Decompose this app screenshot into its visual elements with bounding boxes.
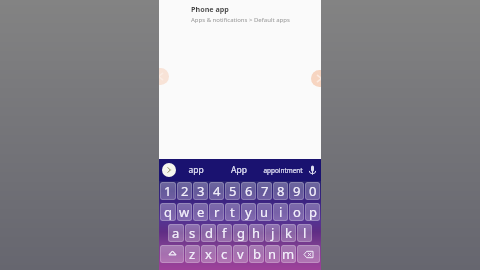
staticText: t [230, 203, 235, 221]
button[interactable]: w [177, 203, 192, 221]
button[interactable]: Voice input [307, 165, 318, 176]
button[interactable]: App [219, 159, 259, 181]
button[interactable]: s [185, 224, 200, 242]
staticText: l [303, 224, 307, 242]
staticText: 6 [245, 182, 253, 200]
button[interactable]: Expand suggestions [162, 163, 176, 177]
staticText: w [179, 203, 190, 221]
button[interactable]: u [257, 203, 272, 221]
button[interactable]: x [201, 245, 216, 263]
staticText: a [172, 224, 180, 242]
staticText: g [237, 224, 245, 242]
staticText: k [285, 224, 292, 242]
staticText: 8 [277, 182, 285, 200]
staticText: i [279, 203, 283, 221]
button[interactable]: i [273, 203, 288, 221]
staticText: 9 [293, 182, 301, 200]
button[interactable]: Backspace [297, 245, 320, 263]
button[interactable]: o [289, 203, 304, 221]
staticText: u [260, 203, 269, 221]
button[interactable]: 6 [241, 182, 256, 200]
button[interactable]: k [281, 224, 296, 242]
staticText: y [245, 203, 252, 221]
button[interactable]: 1 [160, 182, 176, 200]
staticText: 2 [181, 182, 189, 200]
button[interactable]: 7 [257, 182, 272, 200]
staticText: r [214, 203, 220, 221]
staticText: 5 [229, 182, 237, 200]
staticText: 3 [197, 182, 205, 200]
staticText: b [253, 245, 261, 263]
staticText: Apps & notifications > Default apps [191, 16, 290, 24]
button[interactable]: a [168, 224, 184, 242]
staticText: q [164, 203, 172, 221]
staticText: Phone app [191, 4, 229, 14]
button[interactable]: r [209, 203, 224, 221]
button[interactable]: g [233, 224, 248, 242]
button[interactable]: b [249, 245, 264, 263]
staticText: z [189, 245, 196, 263]
staticText: appointment [263, 166, 303, 175]
button[interactable]: v [233, 245, 248, 263]
staticText: App [231, 164, 247, 176]
staticText: 1 [164, 182, 172, 200]
button[interactable]: 2 [177, 182, 192, 200]
button[interactable]: h [249, 224, 264, 242]
button[interactable]: 3 [193, 182, 208, 200]
staticText: h [252, 224, 261, 242]
button[interactable]: y [241, 203, 256, 221]
staticText: j [271, 224, 275, 242]
button[interactable]: Shift [160, 245, 184, 263]
button[interactable]: Next [311, 70, 321, 87]
staticText: c [221, 245, 228, 263]
button[interactable]: d [201, 224, 216, 242]
button[interactable]: q [160, 203, 176, 221]
staticText: d [205, 224, 213, 242]
staticText: n [268, 245, 277, 263]
button[interactable]: 8 [273, 182, 288, 200]
staticText: v [237, 245, 244, 263]
button[interactable]: app [176, 159, 216, 181]
button[interactable]: Previous [159, 68, 169, 85]
staticText: app [188, 164, 204, 176]
button[interactable]: n [265, 245, 280, 263]
staticText: x [205, 245, 212, 263]
button[interactable]: t [225, 203, 240, 221]
button[interactable]: f [217, 224, 232, 242]
button[interactable]: 9 [289, 182, 304, 200]
button[interactable]: 0 [305, 182, 320, 200]
button[interactable]: p [305, 203, 320, 221]
staticText: m [282, 245, 295, 263]
staticText: 0 [309, 182, 317, 200]
button[interactable]: j [265, 224, 280, 242]
staticText: s [189, 224, 196, 242]
button[interactable]: l [297, 224, 312, 242]
button[interactable]: appointment [258, 159, 308, 181]
staticText: e [197, 203, 205, 221]
staticText: 4 [213, 182, 221, 200]
button[interactable]: 4 [209, 182, 224, 200]
button[interactable]: 5 [225, 182, 240, 200]
button[interactable]: z [185, 245, 200, 263]
staticText: 7 [261, 182, 269, 200]
staticText: o [293, 203, 301, 221]
button[interactable]: m [281, 245, 296, 263]
button[interactable]: e [193, 203, 208, 221]
staticText: f [222, 224, 227, 242]
button[interactable]: c [217, 245, 232, 263]
staticText: p [309, 203, 317, 221]
